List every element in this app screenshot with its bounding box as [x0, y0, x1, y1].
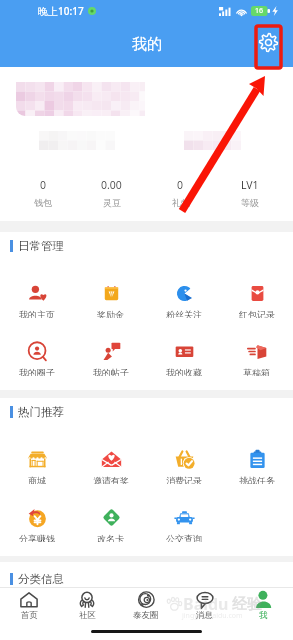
button[interactable]: 0 [146, 164, 215, 221]
staticText: 消费记录 [166, 475, 202, 484]
staticText: 钱包 [34, 197, 52, 208]
staticText: 16 [255, 6, 264, 16]
staticText: 改名卡 [97, 533, 124, 542]
button[interactable]: 泰友圈 [116, 588, 175, 624]
button[interactable]: Settings [256, 21, 281, 63]
button[interactable]: 粉丝关注 [147, 260, 220, 318]
staticText: 灵豆 [103, 197, 121, 208]
button[interactable]: 分享赚钱 [0, 484, 74, 542]
staticText: 热门推荐 [18, 405, 64, 419]
staticText: 我的 [132, 35, 162, 54]
staticText: 商城 [28, 475, 46, 484]
staticText: 0 [177, 178, 184, 192]
staticText: 分享赚钱 [19, 533, 55, 542]
button[interactable]: 公交查询 [147, 484, 220, 542]
staticText: 邀请有奖 [93, 475, 129, 484]
staticText: 奖励金 [97, 309, 124, 318]
button[interactable]: 0.00 [77, 164, 146, 221]
staticText: 我 [259, 610, 268, 621]
button[interactable]: 改名卡 [74, 484, 147, 542]
button[interactable]: 我的主页 [0, 260, 74, 318]
staticText: 公交查询 [166, 533, 202, 542]
staticText: 日常管理 [18, 239, 64, 253]
button[interactable]: 奖励金 [74, 260, 147, 318]
button[interactable]: LV1 [215, 164, 284, 221]
button[interactable]: 红包记录 [220, 260, 293, 318]
staticText: 经验 [232, 595, 262, 614]
button[interactable]: 首页 [0, 588, 58, 624]
button[interactable]: 挑战任务 [220, 426, 293, 484]
staticText: 社区 [79, 610, 96, 621]
staticText: 礼物 [172, 197, 190, 208]
button[interactable]: 消息 [175, 588, 234, 624]
staticText: Baidu [183, 593, 229, 615]
button[interactable]: 0 [9, 164, 77, 221]
staticText: 等级 [241, 197, 259, 208]
staticText: jingyan.baidu.com [182, 611, 243, 621]
button[interactable]: 商城 [0, 426, 74, 484]
staticText: 首页 [21, 610, 38, 621]
staticText: 草稿箱 [243, 367, 270, 376]
staticText: 0.00 [101, 178, 122, 192]
button[interactable]: 邀请有奖 [74, 426, 147, 484]
staticText: LV1 [241, 178, 259, 192]
staticText: 泰友圈 [133, 610, 159, 621]
staticText: 分类信息 [18, 572, 64, 586]
button[interactable]: 我的收藏 [147, 318, 220, 376]
staticText: 粉丝关注 [166, 309, 202, 318]
staticText: 晚上10:17 [38, 4, 84, 18]
staticText: 我的主页 [19, 309, 55, 318]
staticText: 红包记录 [239, 309, 275, 318]
button[interactable]: 我的圈子 [0, 318, 74, 376]
button[interactable]: 消费记录 [147, 426, 220, 484]
button[interactable]: 社区 [58, 588, 116, 624]
staticText: 挑战任务 [239, 475, 275, 484]
button[interactable]: 我 [234, 588, 293, 624]
button[interactable]: 我的帖子 [74, 318, 147, 376]
staticText: 我的圈子 [19, 367, 55, 376]
staticText: 0 [40, 178, 47, 192]
staticText: 我的收藏 [166, 367, 202, 376]
staticText: 我的帖子 [93, 367, 129, 376]
staticText: 消息 [196, 610, 213, 621]
button[interactable]: 草稿箱 [220, 318, 293, 376]
